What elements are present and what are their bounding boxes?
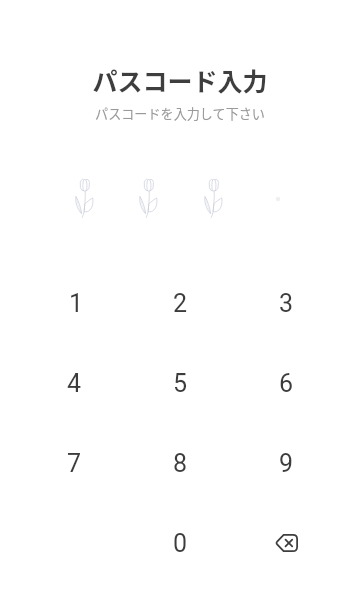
button[interactable]: 6	[246, 343, 326, 423]
staticText: パスコード入力	[0, 62, 360, 98]
button[interactable]: 9	[246, 423, 326, 503]
button[interactable]: 0	[140, 503, 220, 583]
staticText: パスコードを入力して下さい	[0, 104, 360, 123]
button[interactable]: 7	[34, 423, 114, 503]
staticText: 1	[69, 289, 84, 318]
button[interactable]: 5	[140, 343, 220, 423]
staticText: 5	[173, 369, 188, 398]
staticText: 6	[279, 369, 294, 398]
staticText: 3	[279, 289, 294, 318]
button[interactable]: 3	[246, 263, 326, 343]
staticText: 2	[173, 289, 188, 318]
staticText: 8	[173, 449, 188, 478]
staticText: 4	[67, 369, 82, 398]
staticText: 7	[67, 449, 82, 478]
staticText: 9	[279, 449, 294, 478]
button[interactable]: 8	[140, 423, 220, 503]
staticText: 0	[173, 529, 188, 558]
button[interactable]: 2	[140, 263, 220, 343]
button[interactable]: Delete	[246, 503, 326, 583]
button[interactable]: 1	[34, 263, 114, 343]
button[interactable]: 4	[34, 343, 114, 423]
